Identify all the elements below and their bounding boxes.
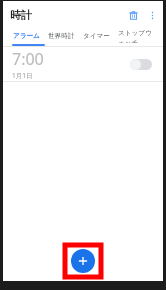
button[interactable]: アラーム: [12, 31, 41, 41]
button[interactable]: Delete: [124, 6, 142, 24]
button[interactable]: 7:00: [3, 47, 163, 81]
staticText: 7:00: [12, 48, 44, 70]
staticText: アラーム: [13, 32, 40, 40]
staticText: 1月1日: [12, 71, 33, 80]
staticText: ストップウォッチ: [118, 29, 158, 43]
button[interactable]: 世界時計: [47, 31, 76, 41]
button[interactable]: Add alarm: [71, 249, 95, 273]
button[interactable]: ストップウォッチ: [117, 28, 159, 44]
staticText: 時計: [10, 8, 32, 22]
button[interactable]: タイマー: [82, 31, 111, 41]
staticText: 世界時計: [48, 32, 75, 40]
staticText: タイマー: [83, 32, 110, 40]
button[interactable]: Alarm toggle: [128, 57, 154, 71]
button[interactable]: More options: [144, 7, 160, 23]
